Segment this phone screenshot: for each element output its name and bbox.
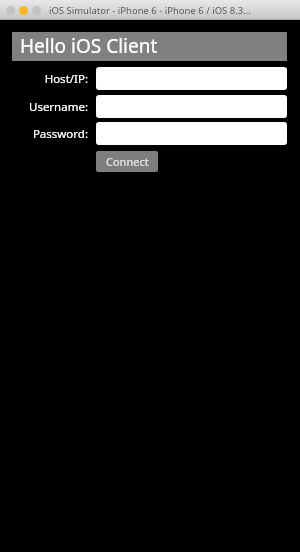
button[interactable]: Minimize window [19, 6, 28, 15]
button[interactable]: Username: [96, 95, 287, 118]
button[interactable]: Close window [6, 6, 15, 15]
staticText: Password: [32, 126, 88, 142]
staticText: Host/IP: [44, 71, 88, 87]
button[interactable]: Zoom window [32, 6, 41, 15]
staticText: iOS Simulator - iPhone 6 - iPhone 6 / iO… [49, 4, 251, 17]
button[interactable]: Connect [96, 151, 158, 172]
button[interactable]: Password: [96, 122, 287, 145]
button[interactable]: Host/IP: [96, 67, 287, 90]
staticText: Hello iOS Client [20, 33, 158, 59]
staticText: Connect [106, 154, 149, 169]
staticText: Username: [28, 99, 88, 115]
